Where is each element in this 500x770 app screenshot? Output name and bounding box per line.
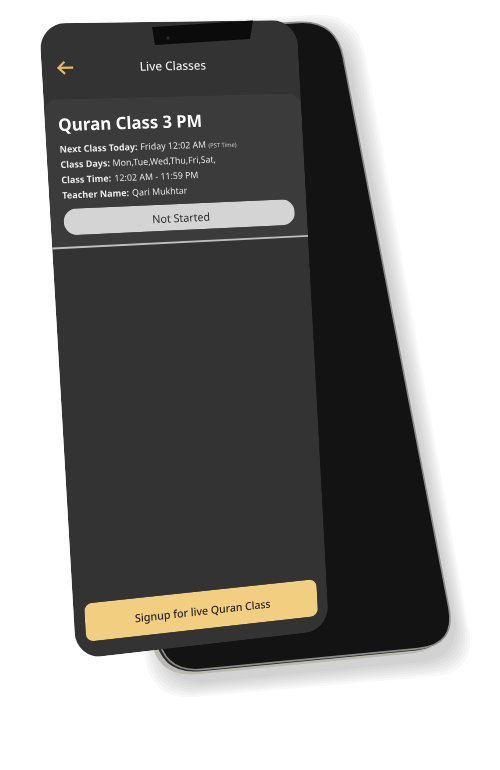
button[interactable]: Signup for live Quran Class: [84, 579, 318, 642]
staticText: Quran Class 3 PM: [57, 109, 203, 136]
staticText: Mon,Tue,Wed,Thu,Fri,Sat,: [112, 152, 216, 168]
staticText: Live Classes: [139, 56, 207, 74]
staticText: Not Started: [152, 209, 211, 226]
staticText: Class Days:: [60, 156, 113, 170]
staticText: Teacher Name:: [62, 186, 132, 201]
staticText: Signup for live Quran Class: [134, 596, 271, 625]
staticText: Qari Mukhtar: [132, 183, 188, 198]
staticText: Class Time:: [61, 171, 115, 185]
button[interactable]: Back: [49, 52, 81, 83]
staticText: Friday 12:02 AM: [140, 138, 209, 152]
staticText: Next Class Today:: [59, 140, 140, 155]
staticText: 12:02 AM - 11:59 PM: [114, 168, 199, 183]
staticText: (PST Time): [208, 141, 237, 150]
button[interactable]: Not Started: [63, 199, 295, 235]
button[interactable]: Quran Class 3 PM: [43, 93, 308, 247]
